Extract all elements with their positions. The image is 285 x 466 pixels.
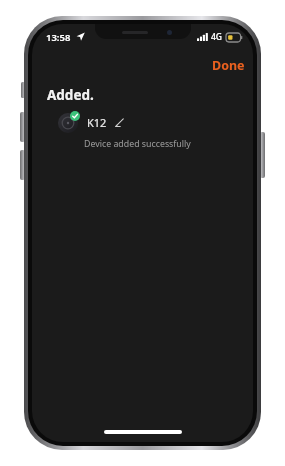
staticText: Done [212,57,245,74]
staticText: 13:58 [46,31,71,44]
staticText: Device added successfully [84,138,191,150]
staticText: K12 [87,115,107,130]
staticText: 4G [211,31,223,43]
button[interactable]: Done [200,51,253,80]
button[interactable]: K12 [32,109,253,156]
staticText: Added. [47,86,94,104]
button[interactable]: Rename device [113,116,126,129]
